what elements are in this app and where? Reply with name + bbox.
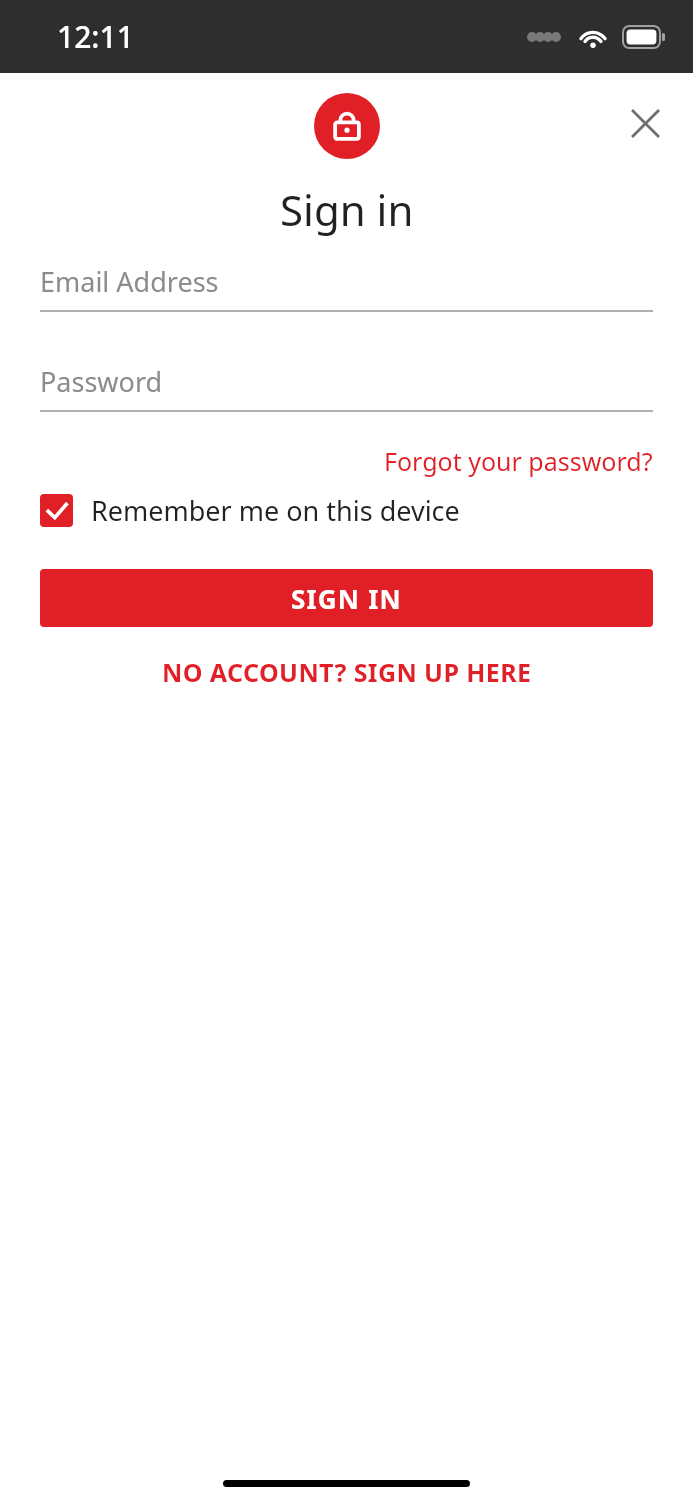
staticText: Password bbox=[40, 363, 163, 400]
button[interactable]: Close bbox=[615, 93, 675, 153]
staticText: Email Address bbox=[40, 263, 219, 300]
button[interactable]: SIGN IN bbox=[40, 569, 653, 627]
button[interactable]: Remember me on this device bbox=[40, 492, 653, 529]
staticText: SIGN IN bbox=[291, 581, 402, 616]
button[interactable]: NO ACCOUNT? SIGN UP HERE bbox=[40, 655, 653, 689]
button[interactable]: Password bbox=[40, 360, 653, 412]
button[interactable]: Forgot your password? bbox=[384, 444, 653, 478]
staticText: Remember me on this device bbox=[91, 492, 460, 529]
staticText: NO ACCOUNT? SIGN UP HERE bbox=[162, 655, 532, 689]
staticText: Sign in bbox=[280, 181, 414, 238]
staticText: 12:11 bbox=[57, 16, 134, 57]
button[interactable]: Email Address bbox=[40, 260, 653, 312]
staticText: Forgot your password? bbox=[384, 444, 653, 478]
